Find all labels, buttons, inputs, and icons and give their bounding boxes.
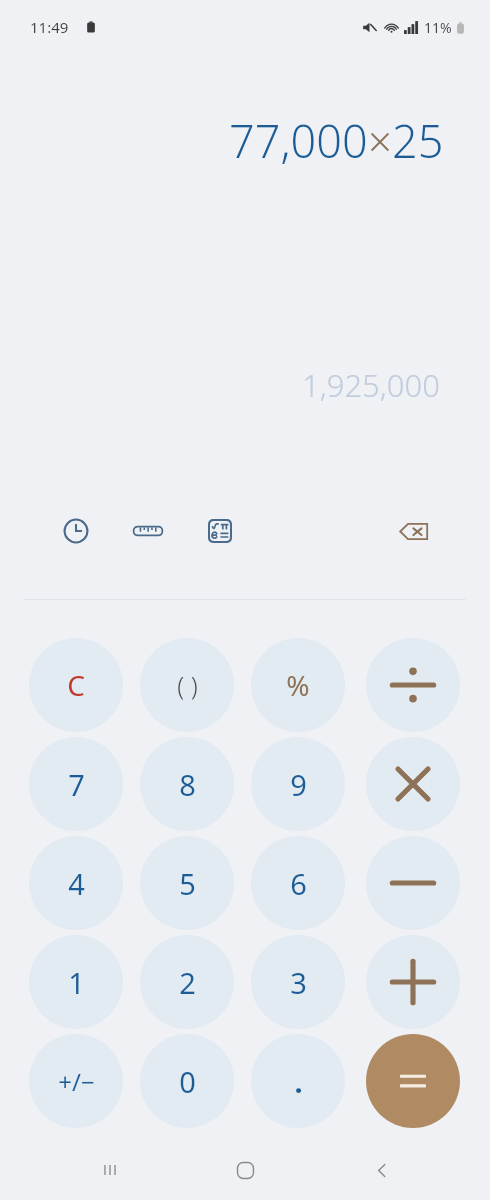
button[interactable]: Scientific calculator [198, 509, 242, 553]
button[interactable]: C [29, 638, 123, 732]
button[interactable]: 4 [29, 836, 123, 930]
staticText: 8 [179, 765, 196, 804]
staticText: 2 [179, 963, 196, 1002]
button[interactable]: Back [362, 1150, 402, 1190]
button[interactable]: . [251, 1034, 345, 1128]
button[interactable]: Equals [366, 1034, 460, 1128]
staticText: 11% [424, 18, 452, 37]
staticText: % [286, 666, 310, 704]
button[interactable]: Divide [366, 638, 460, 732]
button[interactable]: 2 [140, 935, 234, 1029]
staticText: 6 [290, 864, 307, 903]
button[interactable]: 9 [251, 737, 345, 831]
staticText: C [67, 666, 85, 704]
button[interactable]: Home [225, 1150, 265, 1190]
button[interactable]: History [54, 509, 98, 553]
button[interactable]: Multiply [366, 737, 460, 831]
staticText: 9 [290, 765, 307, 804]
staticText: 5 [179, 864, 196, 903]
staticText: 1,925,000 [302, 364, 440, 406]
button[interactable]: 6 [251, 836, 345, 930]
button[interactable]: 3 [251, 935, 345, 1029]
staticText: 11:49 [30, 17, 69, 37]
staticText: 4 [68, 864, 85, 903]
staticText: 7 [68, 765, 85, 804]
button[interactable]: % [251, 638, 345, 732]
button[interactable]: 7 [29, 737, 123, 831]
button[interactable]: 0 [140, 1034, 234, 1128]
button[interactable]: Unit converter [126, 509, 170, 553]
staticText: 0 [179, 1062, 196, 1101]
staticText: 25 [392, 110, 444, 171]
staticText: ( ) [177, 668, 198, 702]
staticText: 3 [290, 963, 307, 1002]
staticText: . [294, 1062, 303, 1101]
staticText: +/− [58, 1065, 95, 1098]
button[interactable]: 1 [29, 935, 123, 1029]
button[interactable]: Subtract [366, 836, 460, 930]
staticText: 1 [68, 963, 85, 1002]
button[interactable]: Recents [90, 1150, 130, 1190]
button[interactable]: 8 [140, 737, 234, 831]
button[interactable]: 5 [140, 836, 234, 930]
button[interactable]: +/− [29, 1034, 123, 1128]
button[interactable]: Backspace [392, 509, 436, 553]
staticText: × [368, 112, 392, 169]
button[interactable]: Add [366, 935, 460, 1029]
staticText: 77,000 [229, 110, 368, 171]
button[interactable]: ( ) [140, 638, 234, 732]
